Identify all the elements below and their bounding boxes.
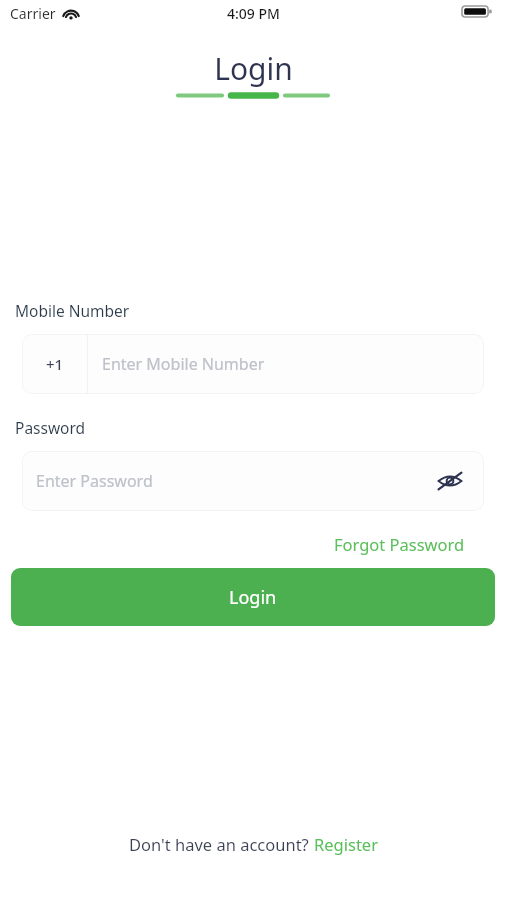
button[interactable]: Login	[11, 568, 495, 626]
staticText: Register	[314, 833, 378, 855]
staticText: Enter Mobile Number	[102, 353, 265, 375]
button[interactable]: Register	[314, 833, 378, 855]
button[interactable]: Show password	[430, 461, 470, 501]
staticText: Mobile Number	[15, 300, 130, 321]
staticText: Password	[15, 417, 86, 438]
staticText: Enter Password	[36, 470, 153, 492]
staticText: Don't have an account?	[129, 833, 314, 855]
staticText: Forgot Password	[334, 533, 465, 555]
button[interactable]: +1	[22, 334, 484, 394]
staticText: Login	[229, 585, 277, 610]
staticText: 4:09 PM	[227, 4, 280, 23]
staticText: Login	[214, 48, 293, 89]
staticText: Carrier	[10, 4, 56, 23]
button[interactable]: Enter Password	[22, 451, 484, 511]
staticText: +1	[46, 354, 64, 374]
button[interactable]: Forgot Password	[330, 531, 469, 557]
